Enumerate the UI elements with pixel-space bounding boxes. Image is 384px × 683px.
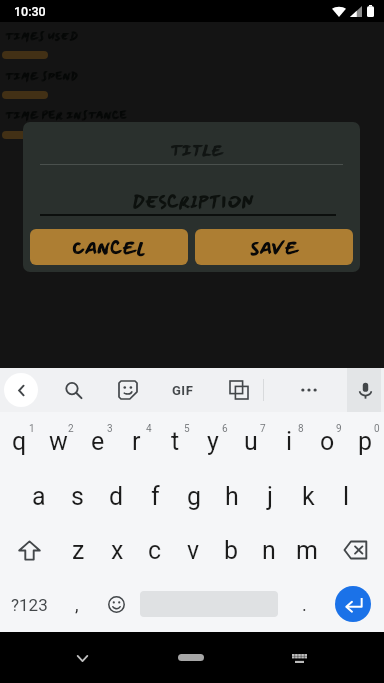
staticText: y	[207, 427, 219, 456]
staticText: .	[302, 594, 307, 615]
staticText: b	[224, 536, 239, 565]
button[interactable]: Comma	[58, 578, 96, 631]
button[interactable]: w	[39, 415, 78, 469]
staticText: TIMES USED	[5, 29, 78, 45]
staticText: 10:30	[14, 4, 46, 19]
button[interactable]: SAVE	[195, 229, 353, 265]
staticText: h	[225, 482, 239, 511]
staticText: t	[171, 427, 180, 456]
staticText: ,	[75, 594, 79, 615]
staticText: i	[286, 427, 293, 456]
staticText: d	[109, 482, 124, 511]
staticText: 2	[68, 423, 74, 435]
staticText: s	[71, 482, 84, 511]
staticText: f	[151, 482, 160, 511]
button[interactable]: Stickers	[109, 368, 147, 412]
button[interactable]: d	[97, 469, 136, 523]
staticText: DESCRIPTION	[133, 189, 254, 215]
staticText: c	[148, 536, 162, 565]
staticText: TITLE	[170, 140, 223, 163]
button[interactable]: More options	[290, 368, 328, 412]
staticText: 1	[29, 423, 35, 435]
button[interactable]: z	[59, 523, 98, 577]
button[interactable]: n	[250, 523, 288, 577]
staticText: 4	[146, 423, 152, 435]
button[interactable]: g	[175, 469, 213, 523]
button[interactable]: Emoji	[97, 578, 135, 631]
button[interactable]: q	[0, 415, 39, 469]
button[interactable]: Home	[178, 654, 204, 661]
staticText: v	[187, 536, 200, 565]
staticText: w	[49, 427, 68, 456]
button[interactable]: Keyboard	[282, 641, 316, 675]
staticText: 5	[184, 423, 190, 435]
button[interactable]: t	[156, 415, 194, 469]
staticText: r	[132, 427, 141, 456]
button[interactable]: y	[194, 415, 232, 469]
staticText: g	[187, 482, 202, 511]
button[interactable]: s	[58, 469, 97, 523]
button[interactable]: Back	[4, 373, 38, 407]
staticText: x	[111, 536, 124, 565]
staticText: z	[72, 536, 85, 565]
staticText: TIME SPEND	[6, 68, 79, 84]
staticText: l	[343, 482, 350, 511]
staticText: TIME SPEND	[5, 68, 78, 84]
staticText: e	[91, 427, 105, 456]
button[interactable]: Backspace	[326, 523, 384, 577]
staticText: DESCRIPTION	[132, 190, 253, 216]
staticText: 8	[298, 423, 304, 435]
button[interactable]: i	[270, 415, 308, 469]
staticText: 6	[222, 423, 228, 435]
staticText: TIME PER INSTANCE	[5, 107, 127, 123]
button[interactable]: p	[346, 415, 384, 469]
staticText: a	[32, 482, 46, 511]
button[interactable]: a	[19, 469, 58, 523]
button[interactable]: GIF	[164, 368, 202, 412]
staticText: p	[358, 427, 373, 456]
button[interactable]: k	[289, 469, 327, 523]
staticText: TIMES USED	[5, 28, 78, 44]
button[interactable]: e	[78, 415, 117, 469]
button[interactable]: Enter	[335, 586, 371, 622]
button[interactable]: l	[327, 469, 365, 523]
button[interactable]: Shift	[0, 523, 59, 577]
staticText: TIMES USED	[6, 28, 79, 44]
staticText: TITLE	[170, 139, 223, 162]
button[interactable]: Search	[54, 368, 92, 412]
button[interactable]: j	[251, 469, 289, 523]
button[interactable]: CANCEL	[30, 229, 188, 265]
button[interactable]: m	[288, 523, 326, 577]
button[interactable]: r	[117, 415, 156, 469]
button[interactable]: c	[136, 523, 174, 577]
button[interactable]: Translate	[220, 368, 258, 412]
staticText: GIF	[172, 383, 194, 398]
staticText: q	[12, 427, 27, 456]
button[interactable]: f	[136, 469, 175, 523]
staticText: n	[262, 536, 276, 565]
button[interactable]: o	[308, 415, 346, 469]
staticText: CANCEL	[73, 234, 147, 261]
staticText: CANCEL	[72, 234, 146, 261]
staticText: SAVE	[251, 234, 300, 261]
staticText: SAVE	[250, 235, 299, 262]
staticText: u	[244, 427, 258, 456]
staticText: TIME SPEND	[5, 69, 78, 85]
staticText: o	[320, 427, 335, 456]
staticText: 3	[107, 423, 113, 435]
button[interactable]: h	[213, 469, 251, 523]
button[interactable]: v	[174, 523, 212, 577]
button[interactable]: Voice input	[346, 368, 384, 412]
button[interactable]: b	[212, 523, 250, 577]
button[interactable]: u	[232, 415, 270, 469]
staticText: DESCRIPTION	[132, 189, 253, 215]
staticText: SAVE	[250, 234, 299, 261]
staticText: 7	[260, 423, 266, 435]
staticText: k	[302, 482, 315, 511]
button[interactable]: x	[98, 523, 136, 577]
button[interactable]: ?123	[0, 578, 58, 631]
button[interactable]: Period	[285, 578, 323, 631]
staticText: j	[267, 482, 273, 511]
button[interactable]: Back	[65, 641, 99, 675]
